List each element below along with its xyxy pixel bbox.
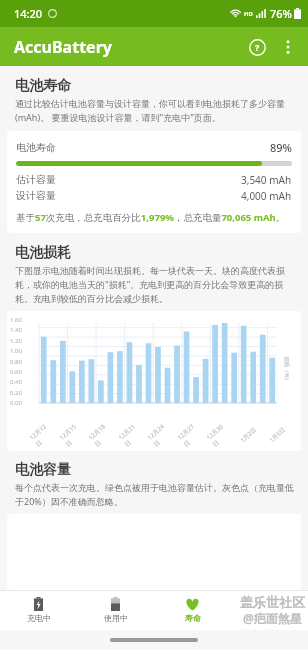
staticText: 12月24日 [146,422,172,448]
staticText: 1.40 [10,326,22,334]
staticText: 设计容量 [16,189,56,202]
staticText: 1.60 [10,316,22,324]
staticText: 使用中 [104,613,128,623]
staticText: 12月12日 [28,422,54,448]
staticText: 1.00 [10,347,22,355]
staticText: 14:20 [14,6,43,21]
staticText: 基于57次充电，总充电百分比1,979%，总充电量70,065 mAh。 [16,211,286,224]
staticText: 3,540 mAh [241,173,292,187]
button[interactable]: 电池寿命 [7,131,301,233]
button[interactable]: 使用中 [77,590,154,630]
staticText: 充电中 [27,613,51,623]
button[interactable]: 寿命 [154,590,231,630]
staticText: 电池损耗 [15,244,71,262]
staticText: 0.80 [10,358,22,366]
staticText: 寿命 [185,613,201,623]
staticText: 1月5日 [268,426,287,444]
staticText: 损耗（%） [282,356,290,383]
staticText: 电池容量 [15,461,71,479]
staticText: 12月27日 [176,422,202,448]
staticText: AccuBattery [14,36,112,58]
staticText: HD [244,10,253,18]
staticText: 12月18日 [87,422,113,448]
staticText: 每个点代表一次充电。绿色点被用于电池容量估计。灰色点（充电量低于20%）因不准确… [15,482,295,508]
staticText: 电池寿命 [15,77,71,95]
staticText: @疤面煞星 [243,610,302,626]
staticText: 12月30日 [205,422,231,448]
staticText: 12月21日 [117,422,143,448]
staticText: 12月15日 [58,422,84,448]
staticText: ? [255,41,260,53]
button[interactable]: Help [241,31,273,63]
staticText: 电池寿命 [16,141,56,154]
staticText: 通过比较估计电池容量与设计容量，你可以看到电池损耗了多少容量(mAh)。 要重设… [15,98,295,124]
staticText: 0.60 [10,368,22,376]
button[interactable]: 充电中 [0,590,77,630]
staticText: 盖乐世社区 [240,594,305,610]
button[interactable]: More options [273,32,303,62]
button[interactable]: 1.60 [7,311,301,451]
button[interactable]: History [231,590,308,630]
staticText: 0.00 [10,399,22,407]
staticText: 4,000 mAh [241,189,292,203]
staticText: 76% [270,6,292,21]
staticText: 下图显示电池随着时间出现损耗。每一块代表一天。块的高度代表损耗，或你的电池当天的… [15,265,295,305]
staticText: 0.20 [10,389,22,397]
staticText: 1月2日 [239,426,258,444]
staticText: 1.20 [10,337,22,345]
staticText: 89% [270,140,292,155]
staticText: 估计容量 [16,173,56,186]
staticText: 0.40 [10,378,22,386]
